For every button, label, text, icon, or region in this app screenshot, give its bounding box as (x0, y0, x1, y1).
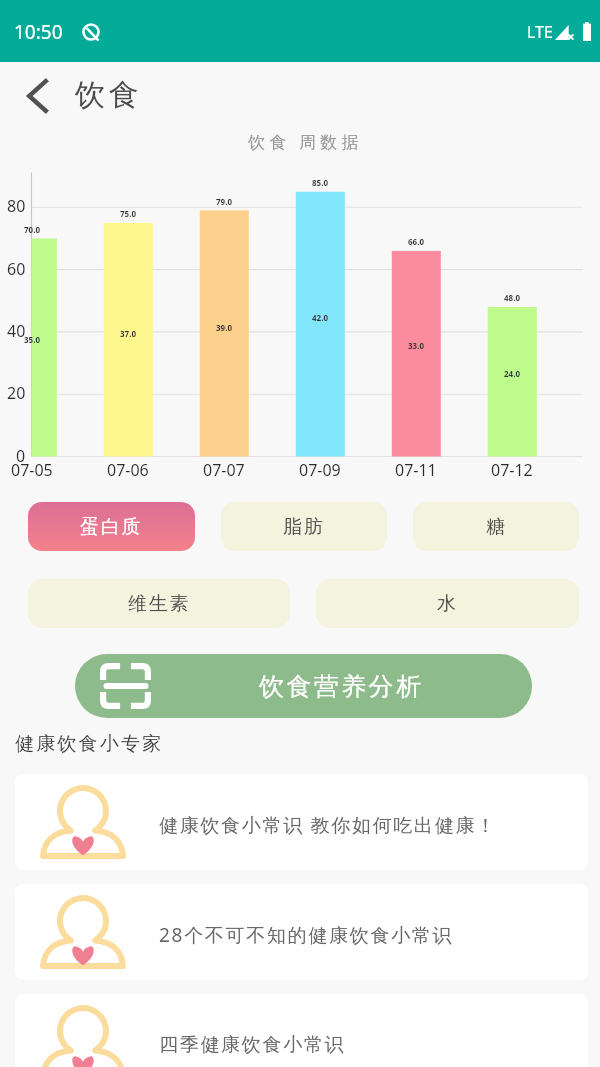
staticText: 07-07 (203, 459, 245, 481)
staticText: 07-05 (11, 459, 53, 481)
staticText: 24.0 (504, 368, 520, 379)
staticText: 蛋白质 (80, 515, 143, 539)
staticText: 07-12 (491, 459, 533, 481)
button[interactable]: 蛋白质 (28, 502, 195, 551)
staticText: 糖 (486, 515, 507, 539)
button[interactable]: 脂肪 (221, 502, 387, 551)
staticText: 健康饮食小专家 (15, 732, 164, 756)
button[interactable]: 饮食营养分析 (75, 654, 532, 718)
staticText: 79.0 (216, 196, 232, 207)
staticText: 60 (7, 258, 26, 280)
staticText: 35.0 (24, 334, 40, 345)
staticText: 维生素 (128, 592, 191, 616)
staticText: 33.0 (408, 340, 424, 351)
staticText: 脂肪 (283, 515, 325, 539)
staticText: 20 (7, 382, 26, 404)
button[interactable]: 28个不可不知的健康饮食小常识 (15, 884, 588, 980)
staticText: 37.0 (120, 328, 136, 339)
staticText: 饮食 (73, 76, 141, 114)
staticText: 66.0 (408, 236, 424, 247)
staticText: 48.0 (504, 292, 520, 303)
button[interactable]: 糖 (413, 502, 579, 551)
staticText: 健康饮食小常识 教你如何吃出健康！ (159, 812, 497, 838)
staticText: 四季健康饮食小常识 (159, 1033, 346, 1057)
staticText: 10:50 (14, 19, 63, 45)
button[interactable]: 健康饮食小常识 教你如何吃出健康！ (15, 774, 588, 870)
staticText: 07-11 (395, 459, 437, 481)
staticText: 07-06 (107, 459, 149, 481)
staticText: 饮食营养分析 (259, 671, 424, 702)
staticText: 40 (7, 320, 26, 342)
button[interactable]: 维生素 (28, 579, 290, 628)
staticText: 28个不可不知的健康饮食小常识 (159, 922, 454, 948)
staticText: 07-09 (299, 459, 341, 481)
staticText: 85.0 (312, 177, 328, 188)
staticText: 饮食 周数据 (248, 130, 363, 153)
staticText: LTE (527, 21, 553, 43)
staticText: 70.0 (24, 224, 40, 235)
staticText: 39.0 (216, 322, 232, 333)
button[interactable]: Back (12, 71, 62, 121)
staticText: 0 (16, 445, 26, 467)
staticText: 75.0 (120, 208, 136, 219)
staticText: 80 (7, 195, 26, 217)
staticText: 水 (437, 592, 458, 616)
staticText: 42.0 (312, 312, 328, 323)
button[interactable]: 四季健康饮食小常识 (15, 994, 588, 1067)
button[interactable]: 水 (316, 579, 579, 628)
